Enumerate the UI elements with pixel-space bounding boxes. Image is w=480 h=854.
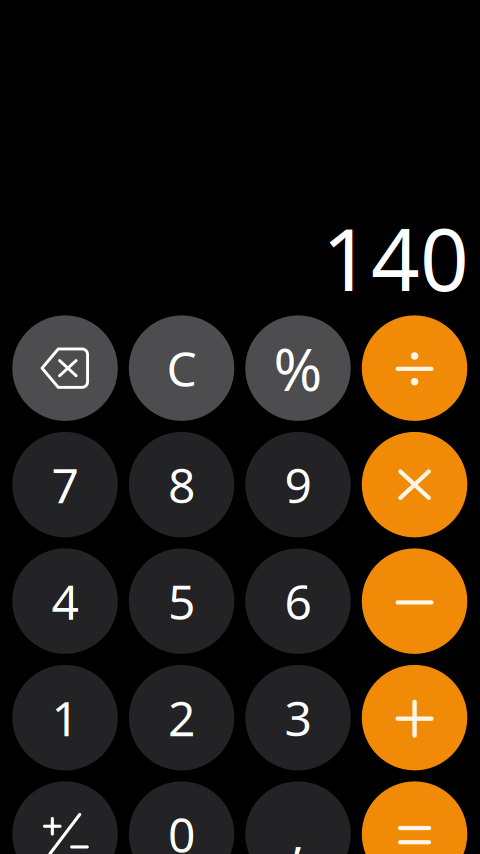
button[interactable]: Subtract — [362, 548, 467, 654]
button[interactable]: Add — [362, 665, 467, 770]
staticText: 1 — [52, 686, 79, 749]
button[interactable]: Clear — [129, 315, 234, 421]
staticText: C — [167, 336, 197, 400]
button[interactable]: 7 — [12, 432, 118, 537]
staticText: 2 — [168, 686, 195, 749]
button[interactable]: Percent — [245, 315, 351, 421]
button[interactable]: Divide — [362, 315, 467, 421]
staticText: 4 — [52, 569, 79, 633]
staticText: , — [292, 802, 305, 854]
button[interactable]: Multiply — [362, 432, 467, 537]
button[interactable]: 6 — [245, 548, 351, 654]
button[interactable]: 3 — [245, 665, 351, 770]
button[interactable]: Toggle sign — [12, 781, 118, 854]
staticText: 6 — [285, 569, 312, 633]
button[interactable]: 4 — [12, 548, 118, 654]
button[interactable]: Equals — [362, 781, 467, 854]
button[interactable]: Delete — [12, 315, 118, 421]
staticText: 7 — [52, 453, 79, 516]
button[interactable]: 1 — [12, 665, 118, 770]
button[interactable]: 5 — [129, 548, 234, 654]
button[interactable]: 9 — [245, 432, 351, 537]
staticText: 9 — [285, 453, 312, 516]
button[interactable]: 8 — [129, 432, 234, 537]
staticText: 8 — [168, 453, 195, 516]
staticText: % — [274, 329, 323, 407]
staticText: 3 — [285, 686, 312, 749]
staticText: 0 — [168, 802, 195, 854]
staticText: 140 — [322, 201, 469, 315]
button[interactable]: Decimal separator — [245, 781, 351, 854]
button[interactable]: 2 — [129, 665, 234, 770]
staticText: 5 — [168, 569, 195, 633]
button[interactable]: 0 — [129, 781, 234, 854]
